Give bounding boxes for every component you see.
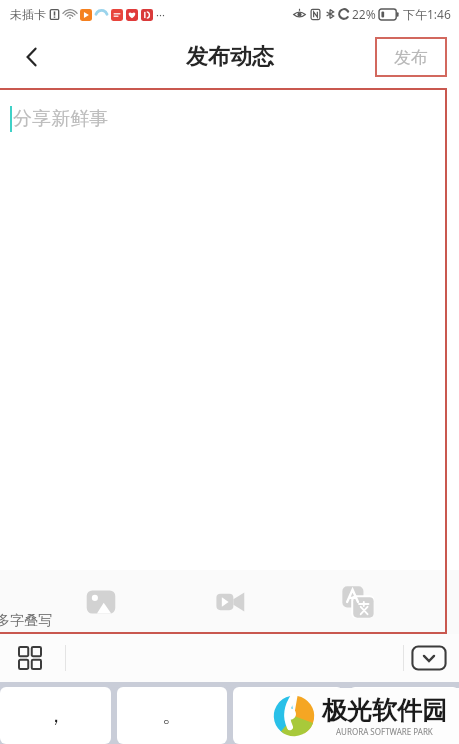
button[interactable]: ， bbox=[0, 687, 111, 744]
staticText: 下午1:46 bbox=[403, 6, 451, 22]
button[interactable]: 发布 bbox=[375, 37, 447, 77]
button[interactable]: 翻译 bbox=[330, 574, 386, 630]
staticText: ？ bbox=[278, 703, 298, 728]
staticText: 。 bbox=[162, 703, 182, 728]
staticText: 多字叠写 bbox=[0, 612, 52, 630]
staticText: 发布 bbox=[394, 47, 428, 68]
staticText: 极光软件园 bbox=[322, 695, 447, 726]
button[interactable]: 返回 bbox=[8, 33, 56, 81]
staticText: 未插卡 bbox=[10, 7, 46, 22]
button[interactable]: 键盘面板 bbox=[8, 636, 52, 680]
staticText: 发布动态 bbox=[186, 43, 274, 71]
staticText: 22% bbox=[352, 6, 376, 22]
button[interactable]: ？ bbox=[233, 687, 343, 744]
button[interactable]: 添加图片 bbox=[73, 574, 129, 630]
button[interactable]: 添加视频 bbox=[202, 574, 258, 630]
staticText: ， bbox=[46, 703, 66, 728]
button[interactable] bbox=[349, 687, 459, 744]
staticText: AURORA SOFTWARE PARK bbox=[336, 726, 433, 737]
button[interactable]: 。 bbox=[117, 687, 227, 744]
button[interactable]: 收起键盘 bbox=[411, 645, 447, 671]
staticText: ··· bbox=[156, 7, 165, 22]
staticText: 分享新鲜事 bbox=[13, 107, 108, 131]
